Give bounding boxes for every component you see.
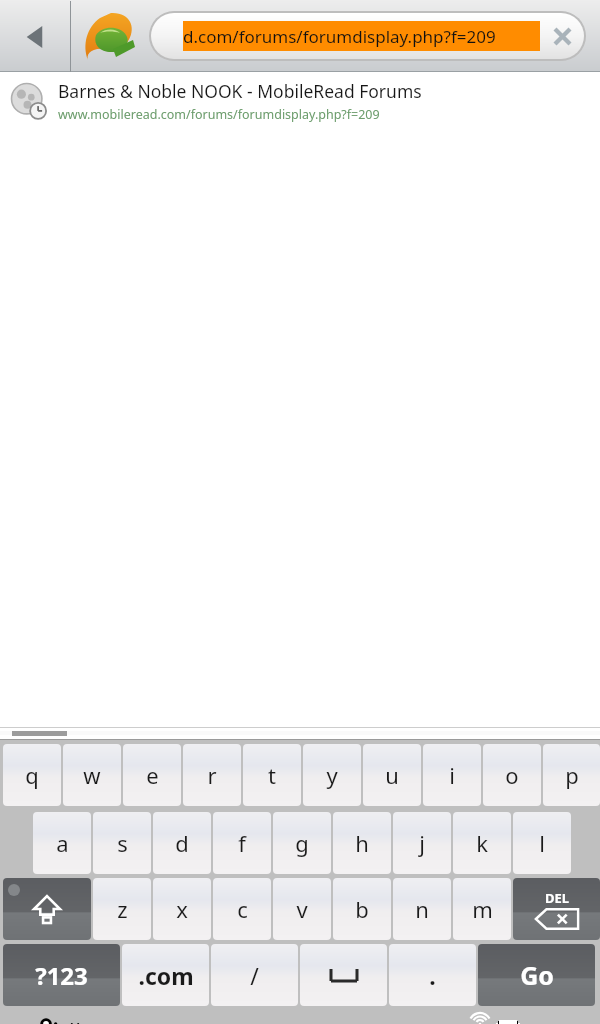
staticText: .com	[138, 960, 194, 991]
staticText: ?123	[35, 959, 88, 992]
button[interactable]: m	[453, 878, 511, 940]
button[interactable]: k	[453, 812, 511, 874]
staticText: i	[449, 760, 455, 790]
button[interactable]: h	[333, 812, 391, 874]
button[interactable]: Back	[0, 1, 70, 72]
staticText: d.com/forums/forumdisplay.php?f=209	[183, 25, 496, 48]
button[interactable]: f	[213, 812, 271, 874]
button[interactable]: n	[393, 878, 451, 940]
staticText: /	[250, 960, 259, 991]
button[interactable]: t	[243, 744, 301, 806]
staticText: .	[429, 960, 436, 991]
staticText: o	[505, 760, 519, 790]
button[interactable]: s	[93, 812, 151, 874]
staticText: s	[117, 828, 128, 858]
staticText: t	[268, 760, 276, 790]
button[interactable]: Space	[300, 944, 387, 1006]
staticText: u	[385, 760, 399, 790]
button[interactable]: i	[423, 744, 481, 806]
staticText: y	[326, 760, 338, 790]
button[interactable]: Browser menu	[71, 1, 149, 72]
staticText: Barnes & Noble NOOK - MobileRead Forums	[58, 79, 422, 103]
button[interactable]: q	[3, 744, 61, 806]
button[interactable]: Shift	[3, 878, 91, 940]
button[interactable]: u	[363, 744, 421, 806]
button[interactable]: ?123	[3, 944, 120, 1006]
staticText: h	[355, 828, 369, 858]
staticText: c	[237, 894, 248, 924]
button[interactable]: l	[513, 812, 571, 874]
button[interactable]: o	[483, 744, 541, 806]
staticText: f	[238, 828, 246, 858]
button[interactable]: Clear	[540, 13, 584, 59]
staticText: v	[296, 894, 308, 924]
button[interactable]: x	[153, 878, 211, 940]
staticText: e	[146, 760, 159, 790]
button[interactable]: r	[183, 744, 241, 806]
staticText: d	[175, 828, 189, 858]
button[interactable]: c	[213, 878, 271, 940]
staticText: j	[419, 828, 425, 858]
button[interactable]: b	[333, 878, 391, 940]
staticText: l	[539, 828, 545, 858]
button[interactable]: v	[273, 878, 331, 940]
staticText: Go	[520, 958, 554, 992]
staticText: z	[117, 894, 128, 924]
button[interactable]: g	[273, 812, 331, 874]
button[interactable]: /	[211, 944, 298, 1006]
button[interactable]: d	[153, 812, 211, 874]
button[interactable]: p	[543, 744, 600, 806]
staticText: a	[56, 828, 69, 858]
staticText: g	[295, 828, 309, 858]
button[interactable]: e	[123, 744, 181, 806]
button[interactable]: w	[63, 744, 121, 806]
button[interactable]: a	[33, 812, 91, 874]
staticText: r	[207, 760, 217, 790]
staticText: m	[472, 894, 493, 924]
staticText: DEL	[545, 889, 570, 907]
button[interactable]: d.com/forums/forumdisplay.php?f=209	[151, 13, 584, 59]
staticText: www.mobileread.com/forums/forumdisplay.p…	[58, 106, 380, 123]
staticText: p	[565, 760, 579, 790]
staticText: x	[176, 894, 188, 924]
button[interactable]: y	[303, 744, 361, 806]
staticText: b	[355, 894, 369, 924]
button[interactable]: z	[93, 878, 151, 940]
staticText: w	[83, 760, 101, 790]
button[interactable]: j	[393, 812, 451, 874]
button[interactable]: Delete	[513, 878, 600, 940]
button[interactable]: .	[389, 944, 476, 1006]
staticText: n	[415, 894, 429, 924]
staticText: q	[25, 760, 39, 790]
button[interactable]: Barnes & Noble NOOK - MobileRead Forums	[0, 72, 600, 129]
button[interactable]: Go	[478, 944, 595, 1006]
staticText: k	[476, 828, 488, 858]
button[interactable]: .com	[122, 944, 209, 1006]
